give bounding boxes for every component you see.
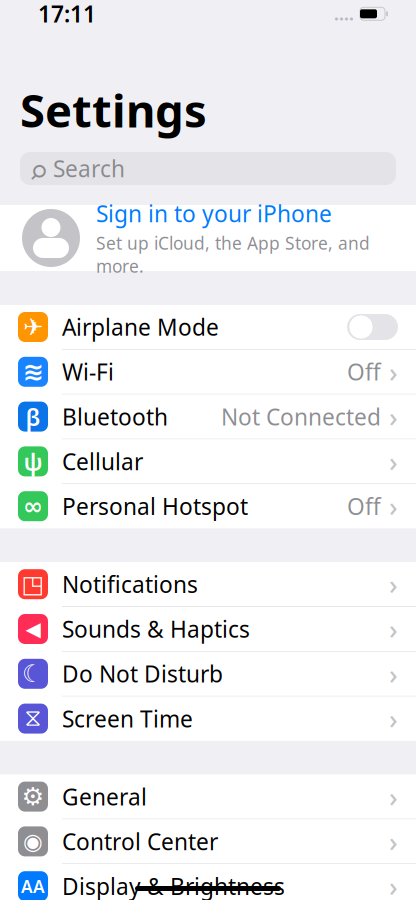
button[interactable]: ⧖: [0, 697, 416, 741]
staticText: β: [25, 401, 40, 433]
staticText: ⌕: [30, 142, 47, 195]
staticText: AA: [21, 875, 45, 898]
staticText: Bluetooth: [62, 401, 168, 432]
staticText: Control Center: [62, 826, 218, 856]
staticText: Personal Hotspot: [62, 491, 248, 521]
button[interactable]: ✈: [0, 305, 416, 349]
staticText: ›: [389, 824, 398, 859]
staticText: ›: [389, 444, 398, 479]
button[interactable]: ☾: [0, 652, 416, 696]
staticText: Set up iCloud, the App Store, and more.: [96, 231, 370, 277]
button[interactable]: ψ: [0, 439, 416, 483]
staticText: Cellular: [62, 446, 143, 476]
staticText: ›: [389, 701, 398, 736]
staticText: ∞: [23, 493, 43, 520]
button[interactable]: β: [0, 395, 416, 439]
staticText: ›: [389, 566, 398, 602]
button[interactable]: ∞: [0, 484, 416, 528]
staticText: ›: [389, 488, 398, 524]
staticText: Wi-Fi: [62, 357, 114, 387]
staticText: ≋: [22, 357, 43, 386]
staticText: ◳: [21, 571, 44, 598]
button[interactable]: AA: [0, 864, 416, 900]
button[interactable]: ≋: [0, 350, 416, 394]
button[interactable]: ⚙: [0, 775, 416, 819]
staticText: ....: [334, 2, 354, 25]
button[interactable]: ◳: [0, 562, 416, 606]
staticText: ›: [389, 399, 398, 434]
staticText: Sign in to your iPhone: [96, 198, 332, 228]
staticText: Search: [53, 153, 125, 183]
staticText: Sounds & Haptics: [62, 614, 250, 644]
staticText: ⚙: [21, 782, 44, 811]
button[interactable]: ◀: [0, 607, 416, 651]
staticText: Notifications: [62, 569, 198, 599]
staticText: ›: [389, 656, 398, 691]
staticText: ›: [389, 779, 398, 814]
staticText: ✈: [23, 313, 43, 341]
staticText: ⧖: [24, 707, 41, 730]
staticText: Do Not Disturb: [62, 659, 223, 689]
staticText: Not Connected: [221, 401, 381, 432]
button[interactable]: ◉: [0, 819, 416, 863]
staticText: ☾: [22, 660, 44, 687]
staticText: Display & Brightness: [62, 871, 285, 900]
staticText: ›: [389, 868, 398, 900]
staticText: Off: [347, 357, 381, 387]
staticText: 17:11: [38, 0, 96, 29]
button[interactable]: ⌕: [20, 152, 396, 185]
button[interactable]: Sign in to your iPhone: [0, 205, 416, 271]
staticText: Screen Time: [62, 703, 193, 734]
staticText: ◀: [25, 618, 40, 640]
staticText: ›: [389, 354, 398, 389]
staticText: General: [62, 781, 147, 812]
staticText: ◉: [23, 828, 43, 854]
staticText: ›: [389, 611, 398, 647]
staticText: Airplane Mode: [62, 312, 219, 342]
staticText: Off: [347, 491, 381, 521]
staticText: Settings: [20, 80, 207, 140]
staticText: ψ: [23, 445, 42, 477]
